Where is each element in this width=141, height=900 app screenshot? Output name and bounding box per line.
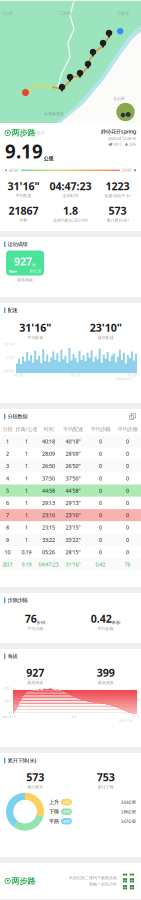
staticText: 1: [25, 499, 28, 506]
staticText: 2.63公里: [121, 799, 136, 805]
staticText: 平路: [49, 818, 59, 824]
staticText: 23%: [129, 142, 136, 147]
staticText: 6: [6, 499, 9, 506]
staticText: 31'16": [65, 561, 80, 568]
staticText: 927: [26, 666, 44, 680]
staticText: 最低海拔: [98, 680, 114, 685]
staticText: 累计爬升: [27, 785, 43, 790]
staticText: 米/步: [112, 620, 121, 625]
staticText: 步/分: [37, 620, 46, 625]
staticText: 44:58: [42, 487, 55, 494]
staticText: 26'50": [65, 462, 80, 470]
staticText: 1: [25, 487, 28, 494]
staticText: 0.42: [95, 561, 105, 568]
staticText: 29%: [63, 799, 70, 805]
staticText: 8: [6, 524, 9, 531]
staticText: 1: [25, 438, 28, 445]
button[interactable]: Copy table: [129, 413, 136, 420]
staticText: 31%: [63, 809, 70, 814]
staticText: 0: [126, 549, 129, 556]
staticText: 0: [99, 475, 102, 482]
staticText: 10'39": [5, 343, 15, 347]
staticText: 0: [126, 475, 129, 482]
staticText: 0: [99, 549, 102, 556]
staticText: 464: [4, 699, 10, 703]
staticText: 上升: [49, 799, 59, 805]
staticText: 44'58": [65, 487, 80, 494]
staticText: 0: [99, 450, 102, 457]
staticText: 23'15": [65, 524, 80, 531]
staticText: 0: [126, 499, 129, 506]
staticText: 2.86公里: [121, 809, 136, 814]
staticText: 热量消耗(千卡): [104, 193, 130, 198]
staticText: 分段数据: [8, 413, 28, 420]
staticText: 76: [25, 612, 37, 626]
staticText: 总计: [2, 561, 12, 568]
staticText: 0: [99, 438, 102, 445]
staticText: 1: [6, 438, 9, 445]
staticText: 步数: [19, 218, 27, 223]
staticText: 1: [25, 536, 28, 543]
staticText: 23:15: [42, 524, 55, 531]
staticText: 0.19: [21, 549, 31, 556]
staticText: 1223: [105, 179, 129, 193]
staticText: 19'01": [5, 356, 15, 360]
staticText: 28:09: [42, 450, 55, 457]
staticText: 0: [126, 512, 129, 519]
staticText: 时间(时:分): [116, 377, 131, 381]
staticText: 05:01: [128, 374, 137, 377]
staticText: 932: [4, 687, 10, 691]
staticText: 46'56": [9, 168, 20, 173]
staticText: 步频步幅: [8, 597, 28, 604]
staticText: 配速: [8, 307, 18, 314]
staticText: 1: [25, 475, 28, 482]
staticText: 2: [6, 450, 9, 457]
staticText: 573: [108, 203, 126, 218]
staticText: 两步路: [12, 128, 36, 138]
staticText: 23'10": [90, 321, 122, 335]
staticText: 静待花开spring: [101, 128, 136, 135]
staticText: 40'18": [65, 438, 80, 445]
staticText: 0: [99, 524, 102, 531]
staticText: 4: [6, 475, 9, 482]
staticText: 和她一起玩户外: [89, 882, 117, 886]
staticText: 1: [25, 450, 28, 457]
staticText: 0: [99, 487, 102, 494]
staticText: 10: [4, 549, 10, 556]
staticText: -4: [7, 712, 10, 715]
staticText: 分段: [2, 426, 12, 432]
staticText: 徒步: [37, 130, 45, 135]
staticText: 全程均配(公里/小时): [53, 218, 88, 223]
staticText: 平均步频: [117, 426, 137, 432]
staticText: 00:00: [14, 374, 23, 377]
staticText: 33'22": [65, 536, 80, 543]
staticText: 最快配速: [98, 335, 114, 340]
staticText: 0: [99, 512, 102, 519]
staticText: 29:13: [42, 499, 55, 506]
staticText: 29'13": [65, 499, 80, 506]
staticText: 927: [14, 254, 32, 268]
staticText: 平均配速: [63, 426, 83, 432]
staticText: 31'16": [7, 179, 39, 193]
staticText: 28'15": [65, 549, 80, 556]
staticText: 9.19: [21, 561, 31, 568]
staticText: 23'10": [65, 512, 80, 519]
staticText: 公里: [43, 155, 53, 162]
staticText: 运动时间: [62, 193, 78, 198]
staticText: 04:47:23: [38, 561, 58, 568]
staticText: 0: [126, 450, 129, 457]
staticText: 23'03": [121, 168, 132, 173]
staticText: 0: [126, 536, 129, 543]
staticText: 0: [126, 524, 129, 531]
staticText: 0: [14, 715, 16, 719]
staticText: 7: [6, 512, 9, 519]
staticText: 0: [126, 462, 129, 470]
staticText: 02:30: [71, 374, 80, 377]
staticText: 海拔: [8, 653, 18, 660]
staticText: 大山界: [1, 11, 13, 16]
staticText: 26:50: [42, 462, 55, 470]
staticText: 运动成绩: [8, 241, 28, 248]
staticText: 时间: [43, 426, 53, 432]
staticText: 3: [6, 462, 9, 470]
staticText: 40:18: [42, 438, 55, 445]
